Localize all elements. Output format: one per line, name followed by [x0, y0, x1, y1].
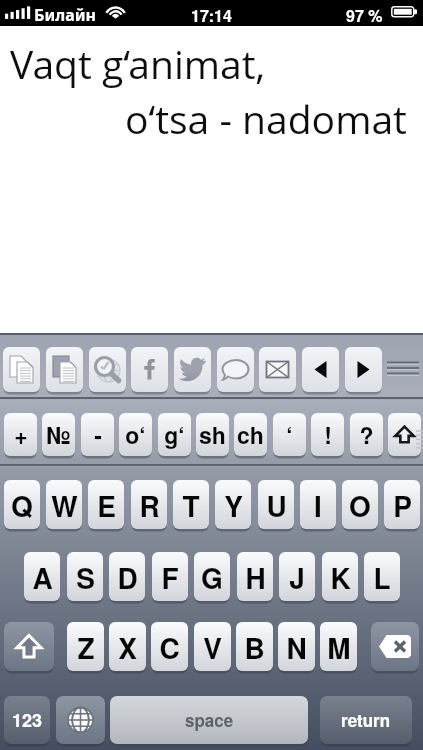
staticText: I — [314, 485, 322, 525]
staticText: K — [330, 557, 351, 597]
button[interactable]: Duplicate — [46, 347, 83, 394]
staticText: F — [161, 557, 179, 597]
button[interactable]: P — [384, 480, 420, 531]
staticText: N — [286, 627, 307, 667]
button[interactable]: Message — [217, 347, 254, 394]
button[interactable]: B — [236, 622, 273, 673]
button[interactable]: N — [278, 622, 315, 673]
button[interactable]: Copy — [3, 347, 40, 394]
button[interactable]: + — [4, 413, 37, 458]
button[interactable]: ! — [311, 413, 344, 458]
staticText: sh — [199, 418, 226, 451]
staticText: X — [118, 627, 137, 667]
staticText: W — [51, 485, 78, 525]
button[interactable]: return — [320, 696, 412, 746]
staticText: D — [117, 557, 138, 597]
staticText: ? — [359, 418, 374, 451]
button[interactable]: № — [42, 413, 75, 458]
button[interactable]: o‘ — [119, 413, 152, 458]
staticText: T — [182, 485, 200, 525]
button[interactable]: Shift — [4, 622, 54, 673]
staticText: A — [32, 557, 53, 597]
staticText: E — [97, 485, 116, 525]
button[interactable]: Facebook — [131, 347, 168, 394]
button[interactable]: ‘ — [273, 413, 306, 458]
staticText: ‘ — [286, 418, 293, 451]
button[interactable]: Menu — [387, 361, 419, 375]
button[interactable]: T — [173, 480, 209, 531]
button[interactable]: Backspace — [371, 622, 419, 673]
button[interactable]: Search — [89, 347, 126, 394]
staticText: ! — [324, 418, 332, 451]
button[interactable]: G — [194, 552, 230, 603]
staticText: B — [244, 627, 265, 667]
staticText: U — [266, 485, 287, 525]
staticText: Билайн — [34, 4, 96, 26]
button[interactable]: Next keyboard — [56, 696, 105, 746]
button[interactable]: ? — [350, 413, 383, 458]
button[interactable]: L — [364, 552, 400, 603]
button[interactable]: O — [342, 480, 378, 531]
button[interactable]: Email — [259, 347, 296, 394]
button[interactable]: - — [81, 413, 114, 458]
button[interactable]: C — [151, 622, 188, 673]
button[interactable]: J — [279, 552, 315, 603]
button[interactable]: X — [109, 622, 146, 673]
button[interactable]: S — [67, 552, 103, 603]
button[interactable]: Y — [215, 480, 251, 531]
staticText: J — [289, 557, 305, 597]
button[interactable]: M — [320, 622, 357, 673]
staticText: g‘ — [164, 418, 185, 451]
staticText: Z — [77, 627, 95, 667]
button[interactable]: W — [46, 480, 82, 531]
button[interactable]: K — [322, 552, 358, 603]
staticText: 97 % — [346, 4, 383, 27]
staticText: G — [201, 557, 223, 597]
staticText: C — [159, 627, 180, 667]
button[interactable]: space — [110, 696, 308, 746]
button[interactable]: Next — [345, 347, 382, 394]
button[interactable]: F — [152, 552, 188, 603]
staticText: M — [327, 627, 351, 667]
staticText: S — [76, 557, 95, 597]
staticText: space — [185, 708, 234, 732]
button[interactable]: Q — [4, 480, 40, 531]
staticText: P — [393, 485, 412, 525]
staticText: Y — [224, 485, 243, 525]
button[interactable]: Twitter — [174, 347, 211, 394]
staticText: + — [14, 418, 28, 451]
staticText: O — [349, 485, 371, 525]
button[interactable]: R — [131, 480, 167, 531]
staticText: R — [139, 485, 160, 525]
button[interactable]: A — [24, 552, 60, 603]
staticText: Q — [11, 485, 33, 525]
button[interactable]: ch — [234, 413, 267, 458]
button[interactable]: sh — [196, 413, 229, 458]
staticText: o‘tsa - nadomat — [125, 92, 407, 145]
button[interactable]: Shift — [388, 413, 421, 458]
button[interactable]: Previous — [302, 347, 339, 394]
button[interactable]: g‘ — [158, 413, 191, 458]
button[interactable]: V — [194, 622, 231, 673]
button[interactable]: E — [88, 480, 124, 531]
staticText: L — [373, 557, 391, 597]
staticText: H — [245, 557, 266, 597]
staticText: o‘ — [125, 418, 146, 451]
button[interactable]: D — [109, 552, 145, 603]
staticText: Vaqt g‘animat, — [10, 37, 266, 90]
staticText: return — [341, 708, 391, 732]
staticText: № — [46, 418, 71, 451]
staticText: V — [203, 627, 222, 667]
staticText: 123 — [12, 707, 43, 733]
staticText: 17:14 — [191, 4, 232, 27]
staticText: ch — [237, 418, 264, 451]
staticText: - — [94, 418, 102, 451]
button[interactable]: H — [237, 552, 273, 603]
button[interactable]: I — [300, 480, 336, 531]
button[interactable]: Z — [67, 622, 104, 673]
button[interactable]: 123 — [4, 696, 50, 746]
button[interactable]: U — [258, 480, 294, 531]
